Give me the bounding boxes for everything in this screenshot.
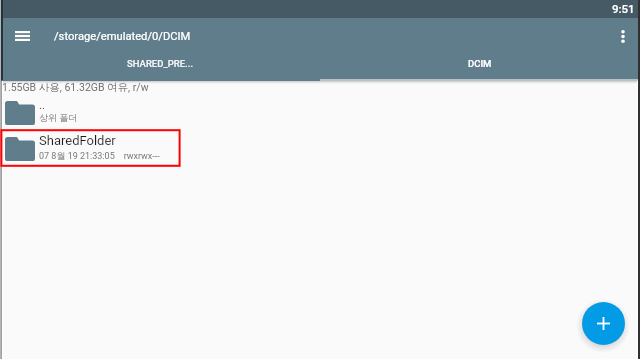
- staticText: SharedFolder: [39, 133, 116, 148]
- staticText: 07 8월 19 21:33:05 rwxrwx---: [39, 150, 160, 161]
- button[interactable]: SHARED_PRE...: [0, 50, 320, 77]
- staticText: 상위 폴더: [39, 112, 78, 123]
- staticText: DCIM: [468, 58, 492, 69]
- staticText: ..: [39, 98, 46, 111]
- staticText: /storage/emulated/0/DCIM: [54, 30, 191, 43]
- button[interactable]: ..: [0, 93, 640, 129]
- staticText: 1.55GB 사용, 61.32GB 여유, r/w: [2, 81, 149, 93]
- button[interactable]: More options: [606, 18, 640, 54]
- staticText: 9:51: [612, 2, 635, 15]
- button[interactable]: SharedFolder: [0, 129, 640, 165]
- button[interactable]: Open navigation drawer: [0, 18, 44, 54]
- button[interactable]: DCIM: [320, 50, 640, 77]
- staticText: SHARED_PRE...: [127, 58, 194, 69]
- button[interactable]: Add: [582, 302, 625, 345]
